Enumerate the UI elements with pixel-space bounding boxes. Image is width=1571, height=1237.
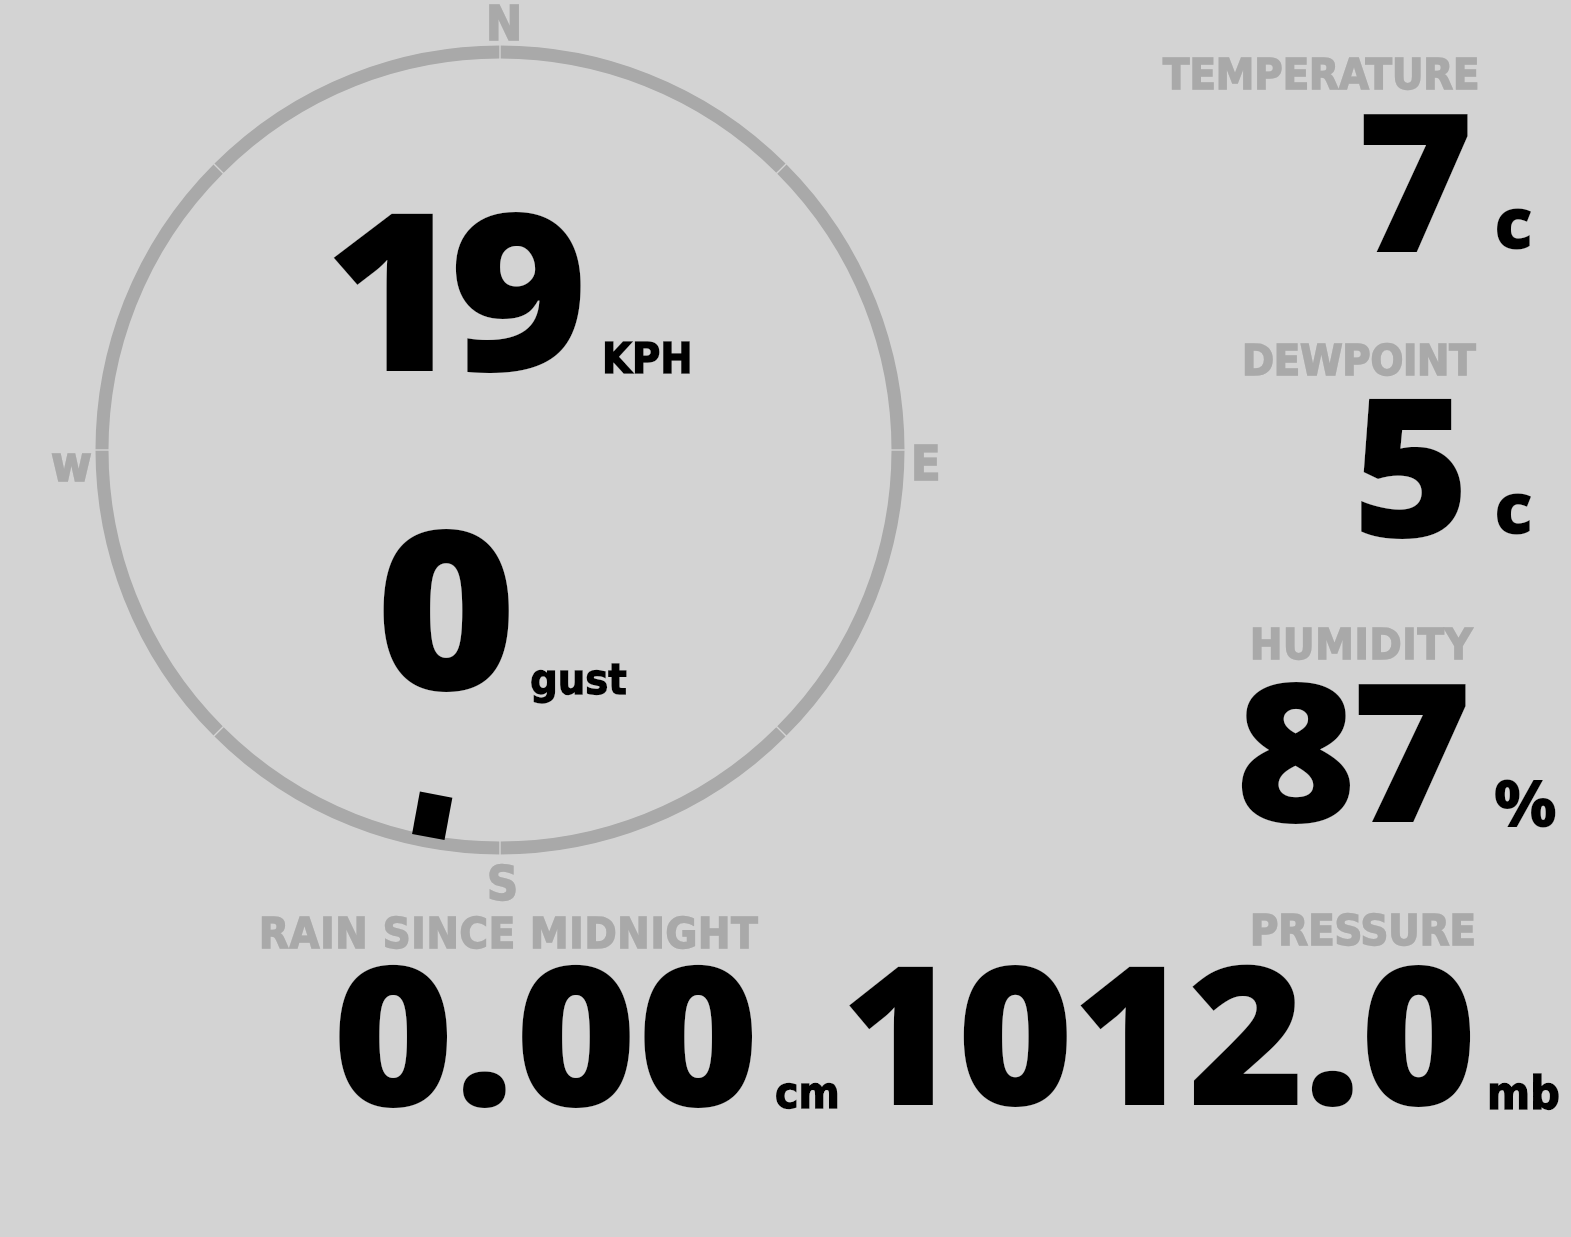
staticText: c bbox=[1494, 457, 1533, 555]
button[interactable]: Rain since midnight 0.00 cm bbox=[255, 895, 845, 1125]
button[interactable]: Temperature 7 degrees Celsius bbox=[1140, 40, 1560, 300]
staticText: 7 bbox=[1356, 46, 1475, 309]
staticText: TEMPERATURE bbox=[1163, 49, 1480, 99]
button[interactable]: Dew point 5 degrees Celsius bbox=[1140, 320, 1560, 580]
staticText: S bbox=[487, 855, 519, 911]
staticText: c bbox=[1494, 172, 1533, 270]
staticText: 0 bbox=[375, 453, 518, 755]
staticText: E bbox=[911, 435, 941, 491]
staticText: % bbox=[1494, 756, 1557, 846]
staticText: DEWPOINT bbox=[1242, 335, 1476, 385]
staticText: 87 bbox=[1235, 616, 1467, 879]
staticText: gust bbox=[530, 654, 627, 704]
staticText: 1012.0 bbox=[841, 898, 1476, 1162]
staticText: 19 bbox=[324, 136, 576, 436]
staticText: HUMIDITY bbox=[1250, 619, 1474, 669]
button[interactable]: Humidity 87 percent bbox=[1140, 610, 1560, 860]
staticText: cm bbox=[775, 1067, 840, 1118]
staticText: PRESSURE bbox=[1250, 905, 1477, 955]
button[interactable]: Wind 19 KPH, gust 0, south-south-west bbox=[95, 45, 905, 855]
staticText: KPH bbox=[602, 333, 693, 383]
staticText: 5 bbox=[1352, 331, 1471, 594]
staticText: mb bbox=[1487, 1066, 1560, 1120]
staticText: N bbox=[486, 0, 523, 51]
staticText: w bbox=[51, 436, 92, 493]
button[interactable]: Pressure 1012.0 mb bbox=[845, 895, 1565, 1125]
staticText: 0.00 bbox=[332, 897, 760, 1164]
staticText: RAIN SINCE MIDNIGHT bbox=[259, 908, 759, 958]
